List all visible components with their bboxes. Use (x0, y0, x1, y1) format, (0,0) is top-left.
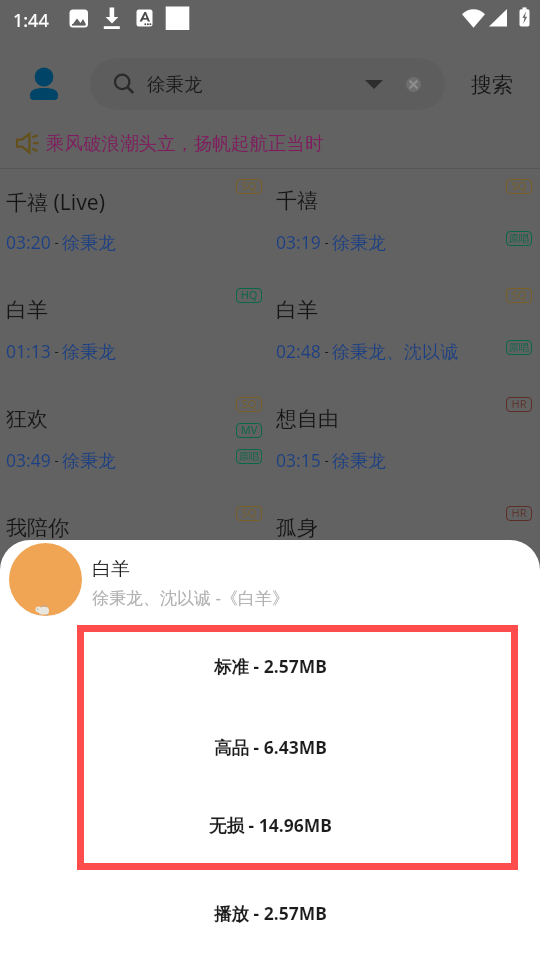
staticText: 徐秉龙 (332, 450, 386, 473)
button[interactable]: 高品 - 6.43MB (0, 734, 540, 760)
button[interactable]: 播放 - 2.57MB (0, 900, 540, 926)
staticText: 原唱 (236, 450, 262, 463)
staticText: 徐秉龙 (147, 73, 203, 96)
button[interactable]: 白羊 (270, 278, 540, 387)
staticText: 徐秉龙、沈以诚 -《白羊》 (92, 586, 289, 609)
button[interactable]: 白羊 (0, 278, 270, 387)
staticText: 搜索 (471, 72, 513, 98)
staticText: 原唱 (506, 232, 532, 245)
staticText: 播放 - 2.57MB (214, 901, 327, 925)
staticText: - (51, 233, 62, 251)
staticText: 03:15 (276, 448, 321, 472)
staticText: - (51, 342, 62, 360)
button[interactable]: 搜索 (459, 62, 525, 108)
staticText: MV (236, 422, 262, 437)
staticText: 白羊 (92, 557, 130, 581)
staticText: 1:44 (13, 8, 49, 33)
staticText: 我陪你 (6, 515, 69, 541)
staticText: 徐秉龙 (62, 341, 116, 364)
button[interactable]: 徐秉龙 (90, 58, 445, 110)
button[interactable]: 标准 - 2.57MB (0, 653, 540, 679)
staticText: - (321, 451, 332, 469)
staticText: SQ (506, 287, 532, 302)
button[interactable]: Album art (9, 543, 82, 616)
staticText: 徐秉龙 (62, 450, 116, 473)
staticText: 03:20 (6, 230, 51, 254)
staticText: 无损 - 14.96MB (209, 813, 332, 837)
staticText: - (6, 561, 17, 579)
staticText: 标准 - 2.57MB (214, 654, 327, 678)
staticText: 高品 - 6.43MB (214, 735, 327, 759)
staticText: 03:19 (276, 230, 321, 254)
staticText: - (321, 342, 332, 360)
staticText: 想自由 (276, 406, 339, 432)
staticText: SQ (236, 178, 262, 193)
staticText: 白羊 (6, 297, 48, 323)
staticText: 孤身 (276, 515, 318, 541)
staticText: 03:49 (6, 448, 51, 472)
button[interactable]: 我陪你 (0, 496, 270, 605)
staticText: HR (506, 396, 532, 411)
staticText: SQ (236, 396, 262, 411)
staticText: SQ (506, 178, 532, 193)
button[interactable]: 孤身 (270, 496, 540, 605)
staticText: SQ (236, 505, 262, 520)
staticText: 原唱 (506, 341, 532, 354)
staticText: 千禧 (Live) (6, 188, 105, 217)
staticText: 02:48 (276, 339, 321, 363)
button[interactable]: 狂欢 (0, 387, 270, 496)
button[interactable]: 乘风破浪潮头立，扬帆起航正当时 (0, 123, 540, 163)
staticText: 乘风破浪潮头立，扬帆起航正当时 (46, 132, 324, 155)
staticText: - (51, 451, 62, 469)
staticText: HQ (236, 287, 262, 302)
staticText: 狂欢 (6, 406, 48, 432)
button[interactable]: 想自由 (270, 387, 540, 496)
staticText: 千禧 (276, 188, 318, 214)
staticText: 01:13 (6, 339, 51, 363)
other: Status icons (0, 0, 540, 40)
staticText: - (321, 233, 332, 251)
staticText: 徐秉龙 (332, 232, 386, 255)
button[interactable]: 千禧 (270, 169, 540, 278)
staticText: 徐秉龙、沈以诚 (332, 341, 458, 364)
staticText: HR (506, 505, 532, 520)
staticText: 白羊 (276, 297, 318, 323)
button[interactable]: 千禧 (Live) (0, 169, 270, 278)
button[interactable]: 无损 - 14.96MB (0, 812, 540, 838)
staticText: 徐秉龙 (62, 232, 116, 255)
button[interactable]: Account (22, 59, 66, 103)
